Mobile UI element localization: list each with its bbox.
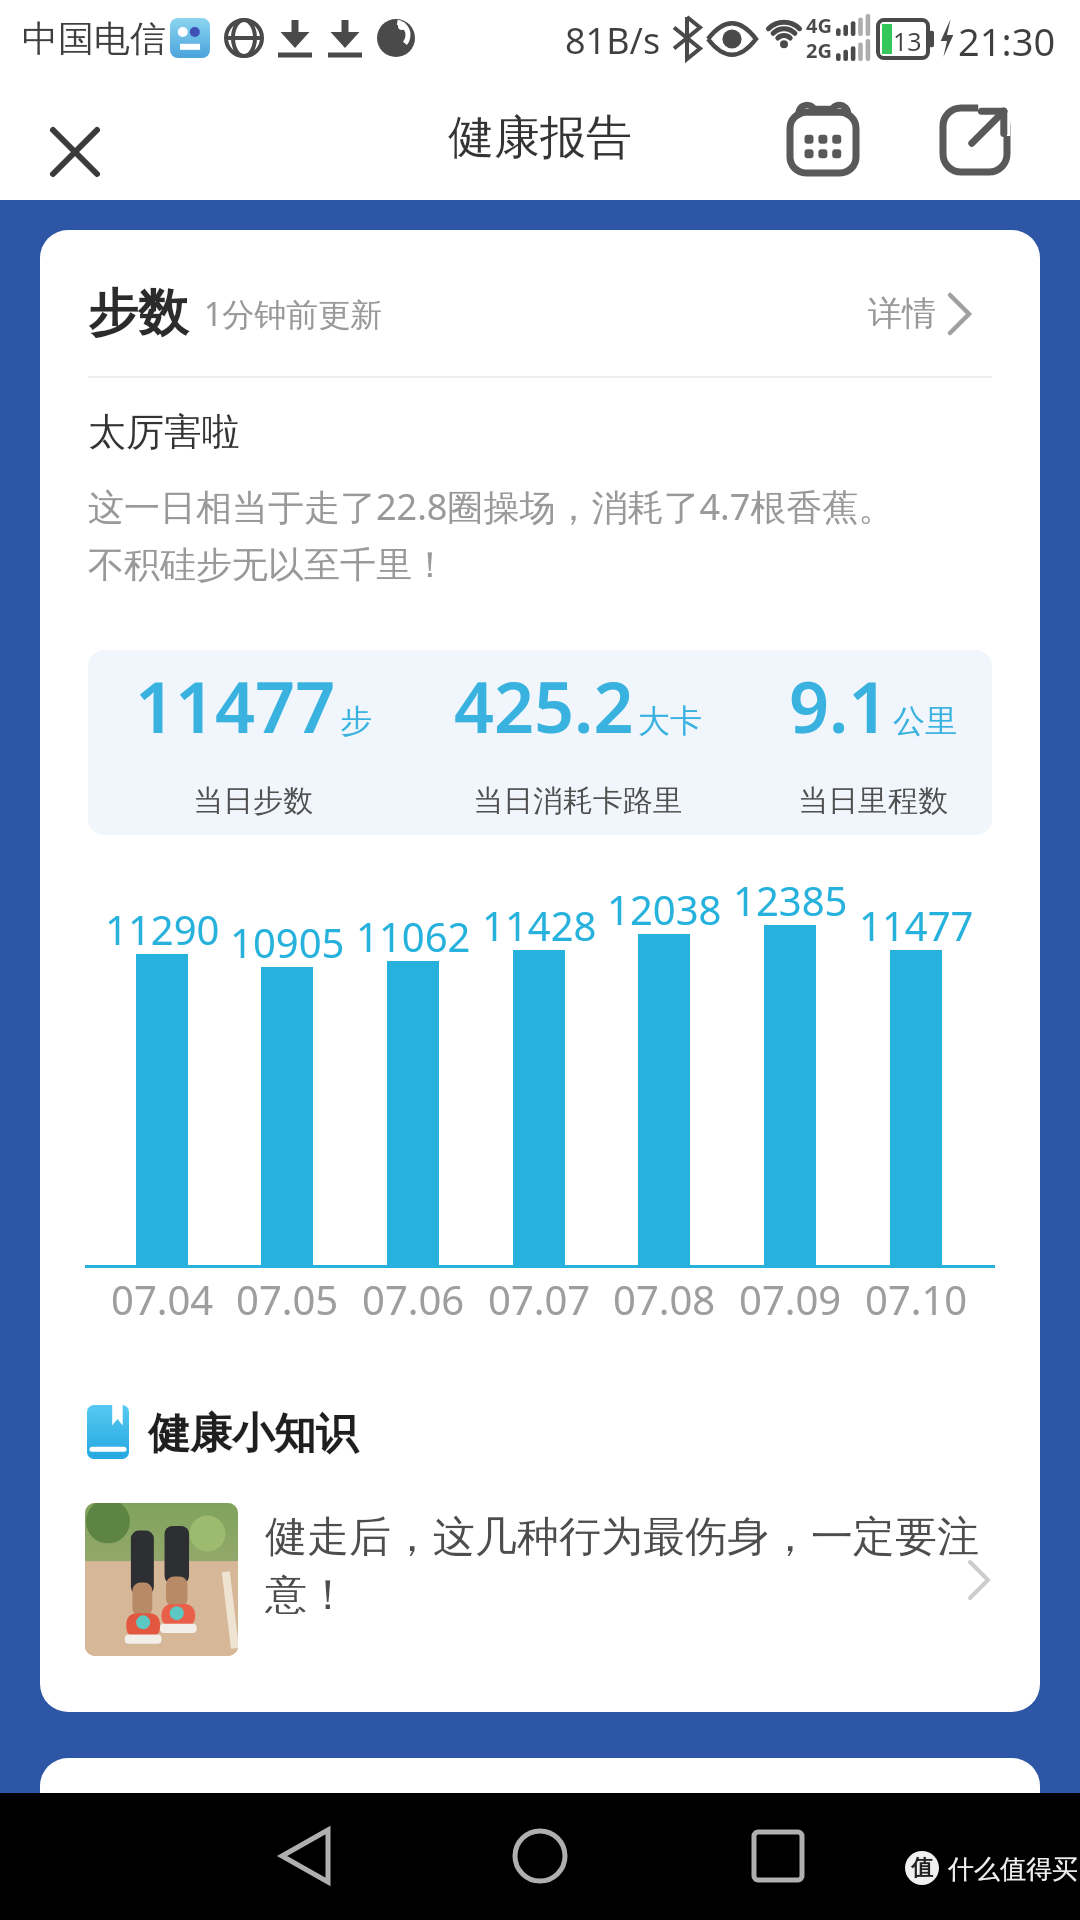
staticText: 1分钟前更新	[204, 292, 383, 336]
staticText: 07.09	[739, 1272, 842, 1326]
button[interactable]	[507, 1823, 573, 1889]
button[interactable]: 详情	[868, 292, 969, 335]
staticText: 步数	[88, 282, 188, 345]
button[interactable]	[40, 117, 110, 187]
staticText: 81B/s	[565, 16, 661, 65]
staticText: 公里	[893, 701, 957, 741]
staticText: 当日消耗卡路里	[473, 782, 683, 820]
button[interactable]	[85, 1503, 238, 1656]
staticText: 中国电信	[22, 16, 166, 61]
staticText: 11477	[135, 658, 336, 753]
staticText: 11428	[482, 898, 597, 952]
staticText: 07.08	[613, 1272, 716, 1326]
staticText: 07.06	[362, 1272, 465, 1326]
staticText: 13	[893, 24, 922, 58]
staticText: 2G	[806, 37, 832, 64]
staticText: 步	[340, 701, 372, 741]
staticText: 11062	[356, 909, 471, 963]
staticText: 详情	[868, 292, 936, 335]
staticText: 健走后，这几种行为最伤身，一定要注 意！	[265, 1511, 979, 1621]
staticText: 4G	[806, 12, 832, 39]
staticText: 12385	[733, 873, 848, 927]
staticText: 07.07	[488, 1272, 591, 1326]
staticText: 12038	[607, 882, 722, 936]
staticText: 11477	[859, 898, 974, 952]
staticText: 大卡	[638, 701, 702, 741]
button[interactable]	[745, 1823, 811, 1889]
staticText: 07.05	[236, 1272, 339, 1326]
staticText: 9.1	[789, 658, 889, 753]
button[interactable]	[270, 1823, 336, 1889]
staticText: 值	[911, 1854, 933, 1882]
staticText: 这一日相当于走了22.8圈操场，消耗了4.7根香蕉。 不积硅步无以至千里！	[88, 482, 895, 588]
staticText: 当日里程数	[798, 782, 948, 820]
staticText: 当日步数	[193, 782, 313, 820]
staticText: 11290	[105, 902, 220, 956]
staticText: 健康小知识	[148, 1408, 358, 1461]
staticText: 425.2	[454, 658, 634, 753]
button[interactable]: 健走后，这几种行为最伤身，一定要注 意！	[85, 1503, 1005, 1656]
button[interactable]	[786, 103, 860, 177]
staticText: 什么值得买	[948, 1853, 1078, 1886]
staticText: 10905	[230, 915, 345, 969]
button[interactable]	[938, 103, 1012, 177]
staticText: 07.04	[111, 1272, 214, 1326]
staticText: 21:30	[958, 15, 1056, 67]
staticText: 健康报告	[448, 109, 632, 167]
staticText: 07.10	[865, 1272, 968, 1326]
staticText: 太厉害啦	[88, 408, 240, 456]
